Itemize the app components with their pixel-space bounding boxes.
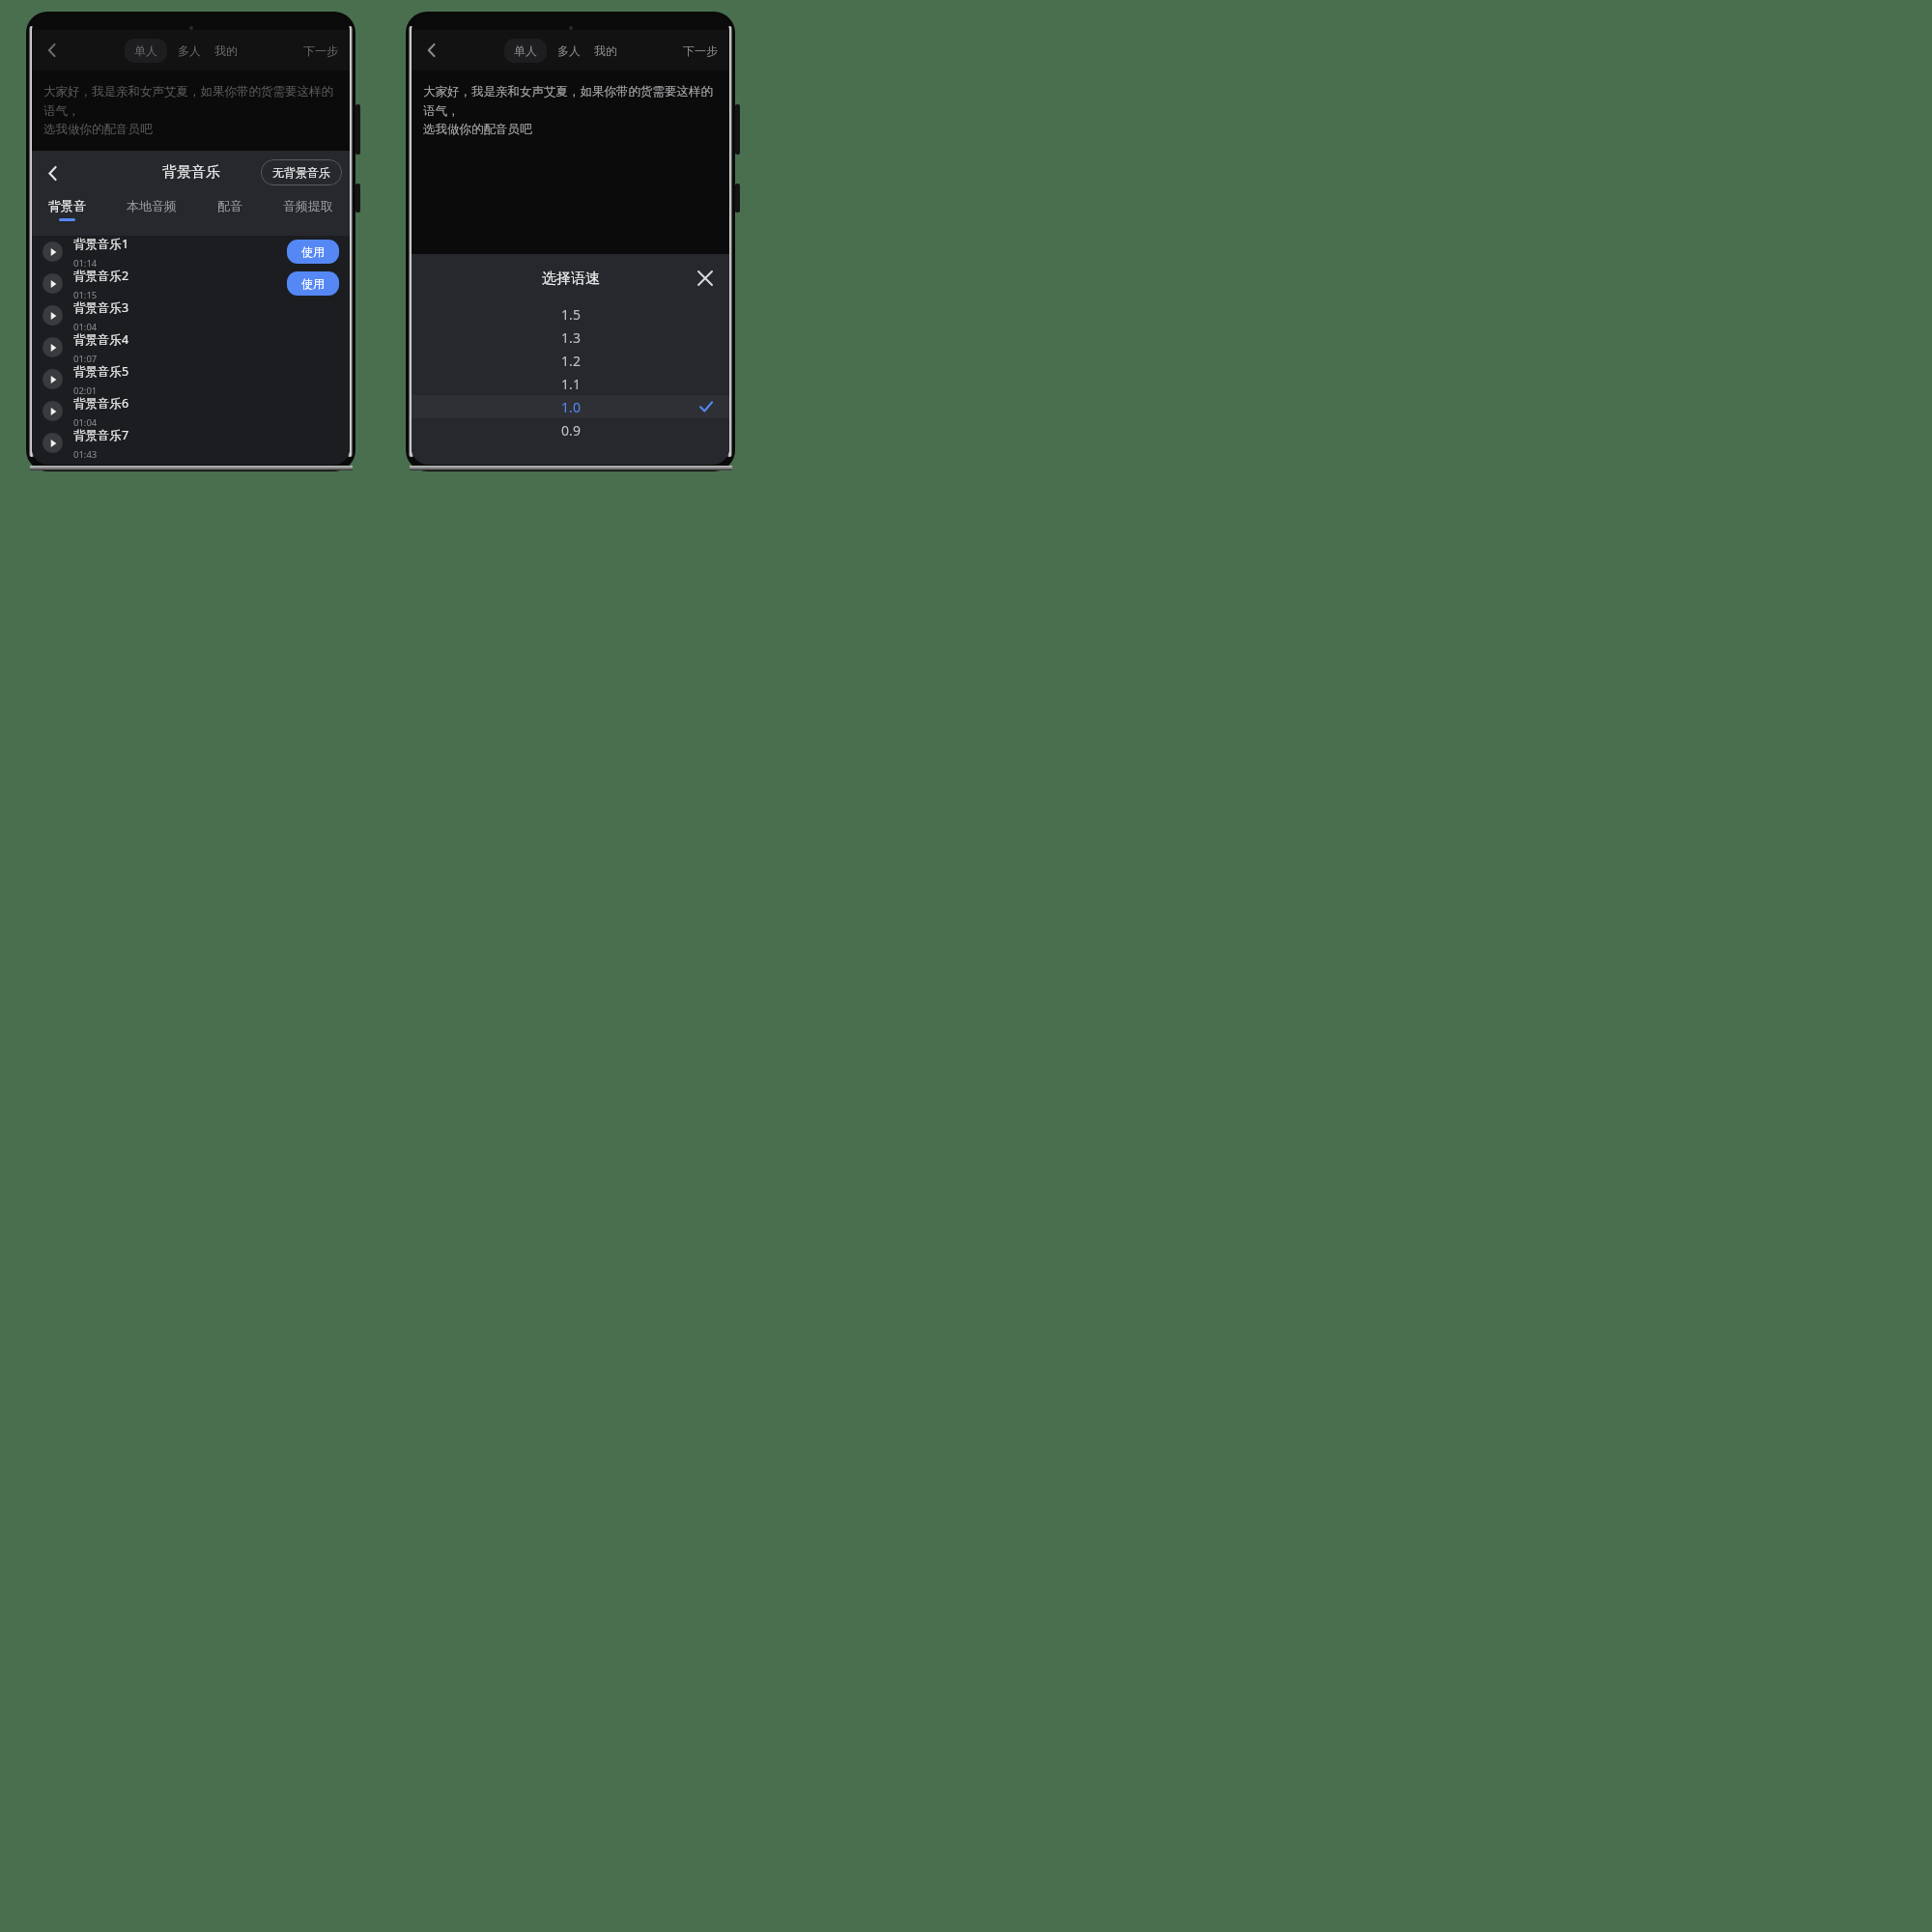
staticText: 背景音乐6	[73, 395, 129, 412]
other: Play 背景音乐2	[43, 273, 63, 294]
button[interactable]: 多人	[173, 39, 206, 63]
button[interactable]: 使用	[287, 271, 339, 296]
staticText: 下一步	[683, 43, 718, 58]
button[interactable]: 1.1	[412, 372, 729, 395]
button[interactable]: 使用	[287, 240, 339, 264]
button[interactable]: 多人	[553, 39, 585, 63]
staticText: 背景音乐	[162, 163, 220, 182]
staticText: 01:04	[73, 416, 98, 427]
button[interactable]: 1.3	[412, 326, 729, 349]
button[interactable]: 我的	[210, 39, 242, 63]
button[interactable]: 单人	[125, 39, 167, 63]
staticText: 01:43	[73, 448, 98, 459]
other: Play 背景音乐7	[43, 433, 63, 453]
other: Play 背景音乐6	[43, 401, 63, 421]
button[interactable]: 背景音	[38, 194, 97, 225]
button[interactable]: Play 背景音乐5	[32, 363, 350, 395]
staticText: 多人	[557, 43, 581, 58]
other: Play 背景音乐1	[43, 241, 63, 262]
staticText: 背景音	[48, 198, 86, 213]
staticText: 使用	[301, 244, 325, 259]
button[interactable]: Close	[691, 264, 720, 293]
button[interactable]: Play 背景音乐2	[32, 268, 350, 299]
button[interactable]: Play 背景音乐3	[32, 299, 350, 331]
staticText: 大家好，我是亲和女声艾夏，如果你带的货需要这样的语气，	[423, 84, 718, 119]
staticText: 1.1	[561, 375, 581, 393]
button[interactable]: 0.9	[412, 418, 729, 441]
other: Play 背景音乐3	[43, 305, 63, 326]
staticText: 1.0	[561, 398, 581, 416]
staticText: 大家好，我是亲和女声艾夏，如果你带的货需要这样的语气，	[43, 84, 338, 119]
staticText: 多人	[178, 43, 201, 58]
button[interactable]: Play 背景音乐1	[32, 236, 350, 268]
staticText: 1.5	[561, 305, 581, 324]
staticText: 01:14	[73, 257, 98, 268]
button[interactable]: Back	[36, 34, 69, 67]
staticText: 背景音乐3	[73, 299, 129, 316]
staticText: 下一步	[303, 43, 338, 58]
staticText: 1.3	[561, 328, 581, 347]
staticText: 配音	[217, 198, 242, 213]
staticText: 音频提取	[283, 198, 333, 213]
staticText: 我的	[594, 43, 617, 58]
button[interactable]: 单人	[504, 39, 547, 63]
staticText: 本地音频	[127, 198, 177, 213]
button[interactable]: 配音	[207, 194, 253, 225]
staticText: 01:04	[73, 321, 98, 331]
staticText: 背景音乐2	[73, 268, 129, 284]
button[interactable]: 无背景音乐	[261, 159, 342, 185]
staticText: 选我做你的配音员吧	[423, 122, 532, 137]
button[interactable]: 1.2	[412, 349, 729, 372]
staticText: 背景音乐1	[73, 236, 129, 252]
staticText: 无背景音乐	[272, 165, 330, 180]
button[interactable]: 我的	[589, 39, 622, 63]
button[interactable]: 下一步	[671, 38, 729, 64]
button[interactable]: Play 背景音乐4	[32, 331, 350, 363]
button[interactable]: 1.5	[412, 302, 729, 326]
staticText: 01:07	[73, 353, 98, 363]
button[interactable]: Play 背景音乐7	[32, 427, 350, 459]
button[interactable]: Back	[36, 156, 69, 189]
staticText: 选我做你的配音员吧	[43, 122, 153, 137]
button[interactable]: Play 背景音乐6	[32, 395, 350, 427]
staticText: 0.9	[561, 421, 581, 440]
staticText: 背景音乐4	[73, 331, 129, 348]
staticText: 背景音乐5	[73, 363, 129, 380]
other: Play 背景音乐4	[43, 337, 63, 357]
staticText: 01:15	[73, 289, 98, 299]
staticText: 单人	[134, 43, 157, 58]
staticText: 02:01	[73, 384, 98, 395]
staticText: 单人	[514, 43, 537, 58]
staticText: 选择语速	[542, 270, 600, 288]
button[interactable]: Back	[415, 34, 448, 67]
button[interactable]: 音频提取	[272, 194, 344, 225]
staticText: 1.2	[561, 352, 581, 370]
button[interactable]: 本地音频	[116, 194, 187, 225]
button[interactable]: 下一步	[292, 38, 350, 64]
staticText: 背景音乐7	[73, 427, 129, 443]
other: Play 背景音乐5	[43, 369, 63, 389]
staticText: 使用	[301, 276, 325, 291]
button[interactable]: 1.0	[412, 395, 729, 418]
staticText: 我的	[214, 43, 238, 58]
